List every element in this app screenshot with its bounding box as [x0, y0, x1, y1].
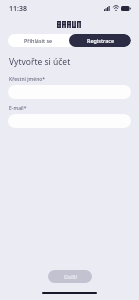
staticText: 11:38 — [9, 4, 27, 14]
button[interactable]: Přihlásit se — [8, 34, 69, 47]
staticText: Další — [64, 273, 77, 280]
button[interactable]: Další — [48, 270, 92, 283]
staticText: Registrace — [87, 37, 114, 44]
staticText: Přihlásit se — [24, 37, 53, 44]
staticText: Vytvořte si účet — [9, 56, 71, 68]
other: Braun logo — [57, 21, 82, 28]
button[interactable]: Registrace — [69, 34, 131, 47]
staticText: E-mail* — [9, 105, 27, 112]
staticText: Křestní jméno* — [9, 76, 46, 83]
